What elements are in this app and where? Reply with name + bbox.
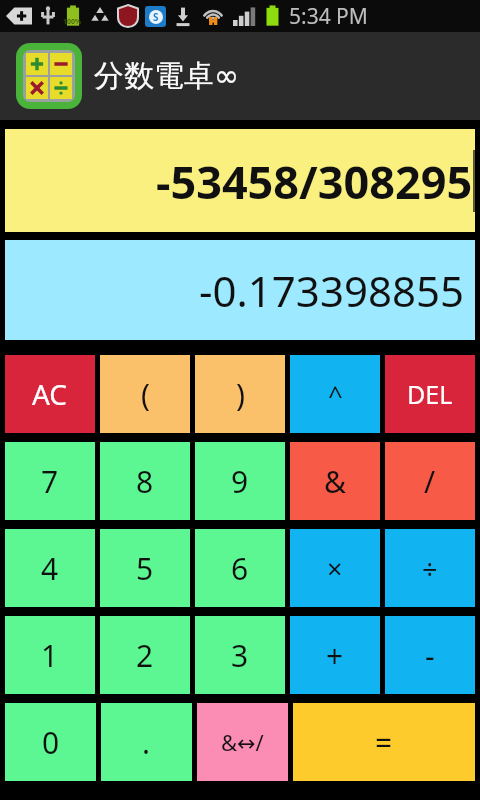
staticText: 4 bbox=[41, 548, 59, 589]
button[interactable]: / bbox=[385, 442, 475, 520]
button[interactable]: ^ bbox=[290, 355, 380, 433]
staticText: 9 bbox=[231, 461, 249, 502]
staticText: + bbox=[326, 635, 344, 676]
staticText: 2 bbox=[136, 635, 154, 676]
staticText: 5 bbox=[136, 548, 154, 589]
staticText: = bbox=[375, 722, 393, 763]
button[interactable]: 9 bbox=[195, 442, 285, 520]
staticText: 100% bbox=[63, 17, 82, 27]
button[interactable]: 3 bbox=[195, 616, 285, 694]
staticText: ) bbox=[236, 374, 245, 415]
staticText: AC bbox=[32, 375, 68, 413]
staticText: 6 bbox=[231, 548, 249, 589]
button[interactable]: DEL bbox=[385, 355, 475, 433]
staticText: DEL bbox=[407, 377, 453, 411]
button[interactable]: = bbox=[293, 703, 475, 781]
button[interactable]: -0.173398855 bbox=[5, 240, 475, 340]
staticText: ^ bbox=[328, 377, 343, 412]
button[interactable]: &↔/ bbox=[197, 703, 288, 781]
button[interactable]: 0 bbox=[5, 703, 96, 781]
button[interactable]: & bbox=[290, 442, 380, 520]
button[interactable]: -53458/308295 bbox=[5, 129, 475, 232]
staticText: 1 bbox=[41, 635, 59, 676]
button[interactable]: AC bbox=[5, 355, 95, 433]
button[interactable]: 1 bbox=[5, 616, 95, 694]
button[interactable]: 4 bbox=[5, 529, 95, 607]
staticText: 0 bbox=[42, 722, 60, 763]
staticText: S bbox=[153, 10, 159, 24]
staticText: ÷ bbox=[422, 550, 438, 587]
button[interactable]: 5 bbox=[100, 529, 190, 607]
button[interactable]: × bbox=[290, 529, 380, 607]
staticText: 7 bbox=[41, 461, 59, 502]
button[interactable]: 8 bbox=[100, 442, 190, 520]
staticText: -53458/308295 bbox=[156, 151, 473, 212]
button[interactable]: ÷ bbox=[385, 529, 475, 607]
staticText: 3 bbox=[231, 635, 249, 676]
staticText: . bbox=[142, 722, 151, 763]
staticText: ( bbox=[141, 374, 150, 415]
button[interactable]: - bbox=[385, 616, 475, 694]
staticText: & bbox=[324, 461, 346, 502]
button[interactable]: ) bbox=[195, 355, 285, 433]
button[interactable]: + bbox=[290, 616, 380, 694]
staticText: × bbox=[327, 550, 343, 587]
button[interactable]: 2 bbox=[100, 616, 190, 694]
staticText: 8 bbox=[136, 461, 154, 502]
button[interactable]: 7 bbox=[5, 442, 95, 520]
staticText: 5:34 PM bbox=[289, 2, 368, 31]
button[interactable]: 6 bbox=[195, 529, 285, 607]
staticText: / bbox=[424, 461, 436, 502]
staticText: - bbox=[425, 635, 435, 676]
staticText: &↔/ bbox=[221, 727, 264, 757]
staticText: -0.173398855 bbox=[199, 262, 465, 319]
button[interactable]: . bbox=[101, 703, 192, 781]
staticText: 分数電卓∞ bbox=[94, 57, 239, 95]
button[interactable]: ( bbox=[100, 355, 190, 433]
